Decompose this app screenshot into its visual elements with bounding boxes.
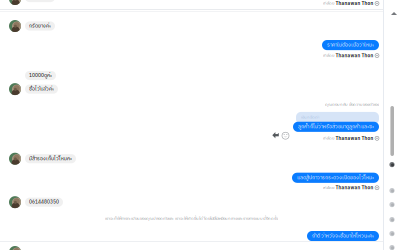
button[interactable]: Chat member xyxy=(389,188,395,193)
button[interactable]: มีสำรองเก็บไว้ไหมคะ xyxy=(25,154,76,163)
staticText: ลูกค้ำ ก็ไม่ว่าหรือส่วยมาดูลูกค้า และซะ xyxy=(298,123,374,131)
staticText: ส่งโดย xyxy=(323,0,334,7)
staticText: ส่งโดย xyxy=(323,52,334,59)
button[interactable]: Reply xyxy=(272,132,279,139)
button[interactable]: แลดสู้ปกาวารกระดวงเปิดของไว้ไหมะ xyxy=(292,173,379,183)
button[interactable]: ซื้อไว้แล้วค่ะ xyxy=(25,84,58,94)
staticText: 10000ดูค่ะ xyxy=(29,71,52,80)
staticText: Thanawan Thon xyxy=(335,185,373,190)
button[interactable]: Chat member xyxy=(389,231,395,236)
button[interactable]: Scroll up xyxy=(389,10,399,17)
button[interactable]: Chat member xyxy=(389,245,395,250)
button[interactable]: ราคาไม่ต้องเมื่อว่าไหมะ xyxy=(322,40,379,50)
staticText: ส่งโดย xyxy=(323,184,334,191)
staticText: มีสำรองเก็บไว้ไหมคะ xyxy=(29,155,72,163)
staticText: ราคาไม่ต้องเมื่อว่าไหมะ xyxy=(327,41,374,49)
button[interactable]: ลูกค้ำ ก็ไม่ว่าหรือส่วยมาดูลูกค้า และซะ xyxy=(293,122,379,132)
button[interactable]: ค่ะรับทราบ xyxy=(25,0,55,2)
staticText: ซื้อไว้แล้วค่ะ xyxy=(29,85,54,93)
staticText: เราจะทำให้การทะเบียนของคุณปลอดภัยและ เรา… xyxy=(105,215,278,222)
button[interactable]: 10000ดูค่ะ xyxy=(25,71,56,80)
staticText: คุณตอบกลับ ข้อความ ของตัวเอง xyxy=(325,101,379,108)
staticText: Thanawan Thon xyxy=(335,136,373,141)
staticText: กรีดยางค่ะ xyxy=(29,22,51,30)
button[interactable]: ถ้าดี ว่าหวังจะชื้อมาให้ไหวนะคะ xyxy=(307,231,379,241)
staticText: Thanawan Thon xyxy=(335,1,373,6)
staticText: 0614480350 xyxy=(29,198,59,206)
staticText: เงินกรีดค่ะ xyxy=(301,114,320,121)
button[interactable]: React xyxy=(282,132,289,139)
button[interactable]: Chat member xyxy=(389,217,395,222)
button[interactable]: Chat member xyxy=(389,162,395,167)
button[interactable]: กรีดยางค่ะ xyxy=(25,21,55,30)
staticText: แลดสู้ปกาวารกระดวงเปิดของไว้ไหมะ xyxy=(297,174,374,182)
button[interactable]: Chat member xyxy=(389,202,395,207)
staticText: ส่งโดย xyxy=(323,135,334,142)
staticText: ถ้าดี ว่าหวังจะชื้อมาให้ไหวนะคะ xyxy=(312,232,374,240)
button[interactable]: 0614480350 xyxy=(25,198,63,207)
staticText: Thanawan Thon xyxy=(335,53,373,58)
